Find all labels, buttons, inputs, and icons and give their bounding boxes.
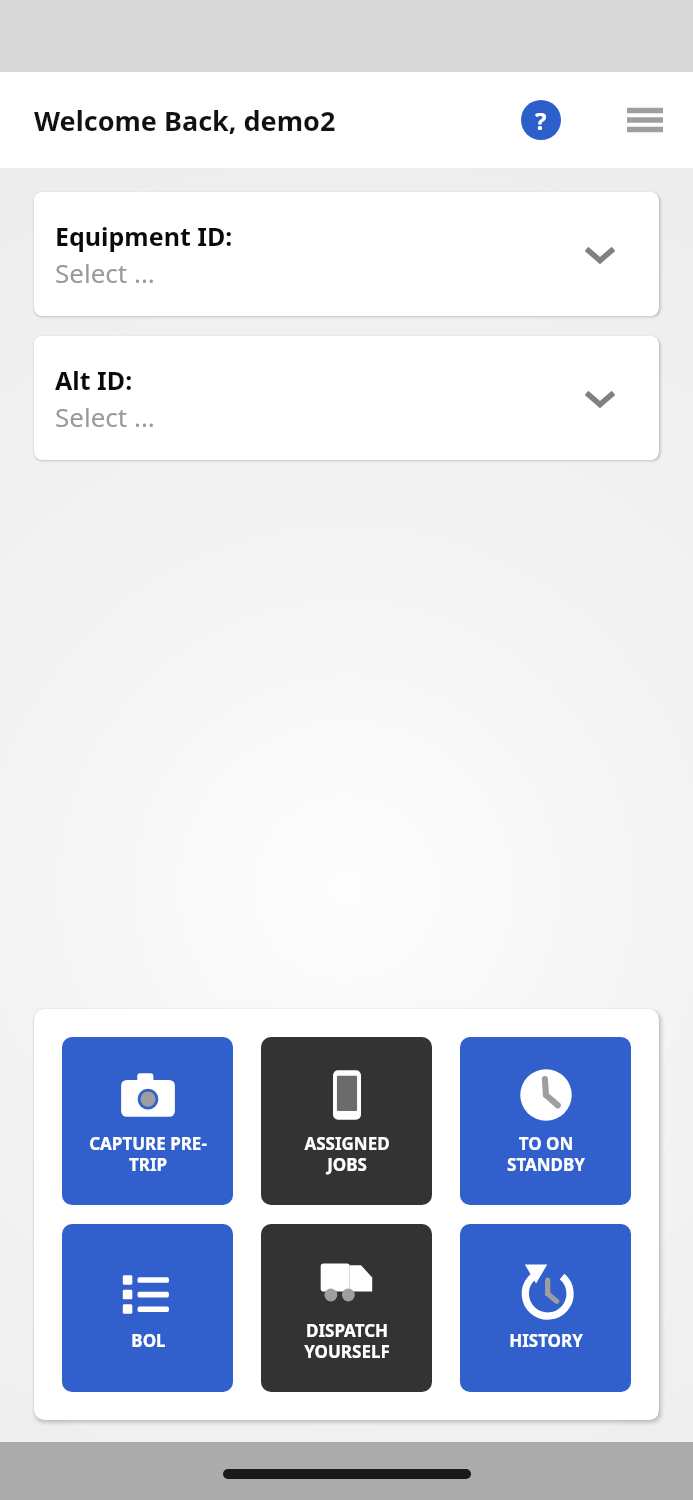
- staticText: TO ON STANDBY: [507, 1132, 585, 1176]
- staticText: Equipment ID:: [55, 219, 233, 253]
- button[interactable]: BOL: [62, 1224, 233, 1392]
- button[interactable]: Help: [511, 90, 571, 150]
- staticText: Welcome Back, demo2: [34, 102, 511, 139]
- staticText: HISTORY: [509, 1329, 583, 1352]
- staticText: Alt ID:: [55, 363, 133, 397]
- staticText: ?: [535, 104, 547, 137]
- button[interactable]: CAPTURE PRE- TRIP: [62, 1037, 233, 1205]
- button[interactable]: TO ON STANDBY: [460, 1037, 631, 1205]
- staticText: ASSIGNED JOBS: [304, 1132, 390, 1176]
- staticText: CAPTURE PRE- TRIP: [89, 1132, 207, 1176]
- button[interactable]: DISPATCH YOURSELF: [261, 1224, 432, 1392]
- button[interactable]: Menu: [615, 90, 675, 150]
- staticText: BOL: [131, 1329, 166, 1352]
- button[interactable]: HISTORY: [460, 1224, 631, 1392]
- button[interactable]: Alt ID:: [34, 336, 659, 460]
- staticText: DISPATCH YOURSELF: [304, 1319, 390, 1363]
- staticText: Select ...: [55, 399, 155, 434]
- button[interactable]: ASSIGNED JOBS: [261, 1037, 432, 1205]
- button[interactable]: Equipment ID:: [34, 192, 659, 316]
- staticText: Select ...: [55, 255, 155, 290]
